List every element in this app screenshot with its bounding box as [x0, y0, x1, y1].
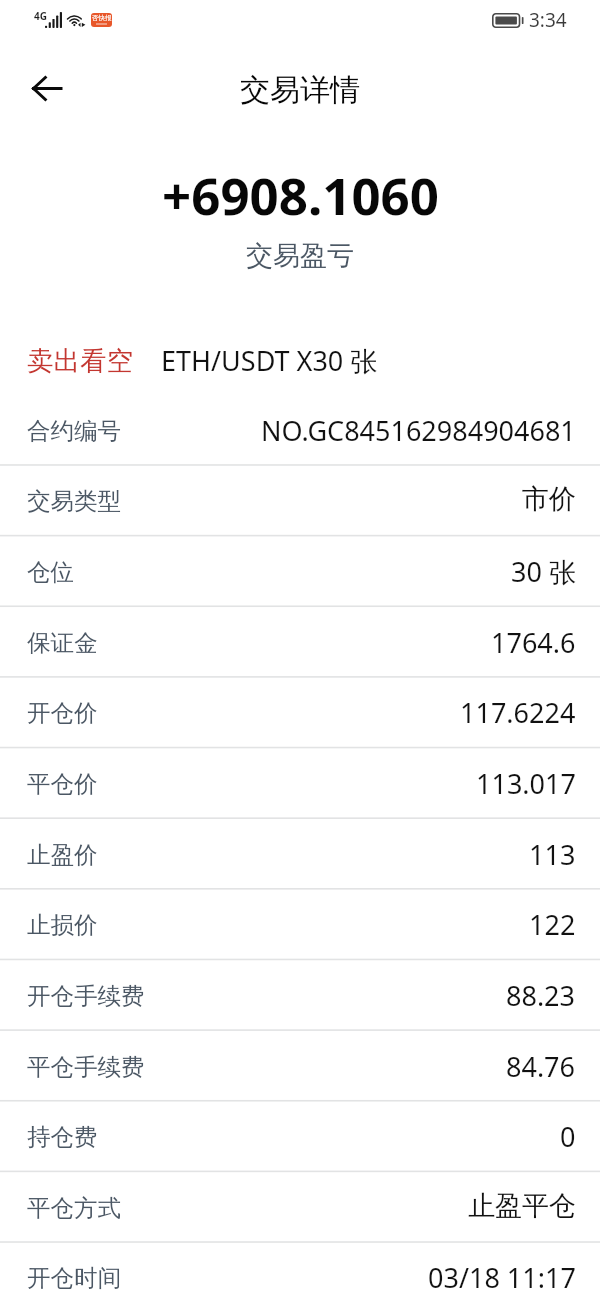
staticText: 卖出看空 [27, 344, 133, 377]
button[interactable] [0, 535, 600, 606]
staticText: 平仓手续费 [27, 1052, 145, 1082]
button[interactable]: 卖出看空 [0, 323, 600, 394]
staticText: 113.017 [476, 765, 576, 802]
button[interactable]: Back [18, 60, 74, 116]
button[interactable] [0, 676, 600, 747]
staticText: 113 [529, 836, 576, 873]
button[interactable] [0, 1241, 600, 1300]
staticText: 交易详情 [240, 71, 360, 109]
staticText: 止盈平仓 [468, 1189, 576, 1223]
button[interactable] [0, 393, 600, 464]
staticText: 1764.6 [491, 624, 576, 661]
staticText: 117.6224 [460, 694, 576, 731]
staticText: 止损价 [27, 910, 98, 940]
staticText: 开仓手续费 [27, 981, 145, 1011]
staticText: 开仓时间 [27, 1263, 121, 1293]
staticText: 仓位 [27, 557, 74, 587]
button[interactable] [0, 605, 600, 676]
button[interactable] [0, 1029, 600, 1100]
staticText: 平仓价 [27, 769, 98, 799]
staticText: 3:34 [529, 7, 567, 33]
button[interactable] [0, 958, 600, 1029]
staticText: 否快报 [92, 14, 112, 22]
staticText: ETH/USDT X30 张 [161, 342, 378, 379]
button[interactable] [0, 464, 600, 535]
staticText: 交易盈亏 [246, 239, 354, 273]
button[interactable] [0, 888, 600, 959]
staticText: 市价 [522, 482, 576, 516]
button[interactable] [0, 747, 600, 818]
button[interactable] [0, 1100, 600, 1171]
staticText: 84.76 [506, 1048, 576, 1085]
staticText: 平仓方式 [27, 1193, 121, 1223]
staticText: 保证金 [27, 628, 98, 658]
staticText: 合约编号 [27, 416, 121, 446]
staticText: NO.GC845162984904681 [261, 412, 576, 449]
staticText: 交易类型 [27, 486, 121, 516]
button[interactable] [0, 817, 600, 888]
staticText: 4G [34, 9, 47, 23]
staticText: 122 [529, 906, 576, 943]
button[interactable] [0, 1170, 600, 1241]
staticText: 0 [560, 1118, 576, 1155]
staticText: +6908.1060 [162, 160, 439, 220]
staticText: 30 张 [511, 553, 576, 590]
staticText: 持仓费 [27, 1122, 98, 1152]
staticText: 03/18 11:17 [428, 1259, 576, 1296]
staticText: 88.23 [506, 977, 576, 1014]
staticText: 开仓价 [27, 698, 98, 728]
staticText: 止盈价 [27, 840, 98, 870]
